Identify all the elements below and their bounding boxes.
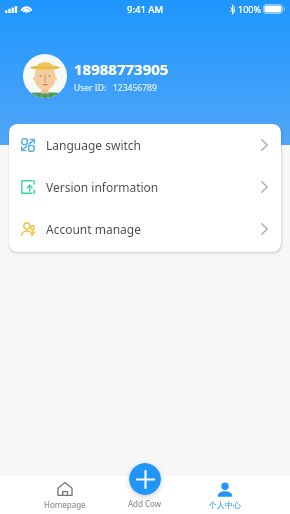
staticText: 123456789 [113,82,157,94]
button[interactable]: Account manage [9,208,281,250]
button[interactable]: Version information [9,166,281,208]
staticText: 18988773905 [74,59,169,79]
button[interactable]: Add Cow [121,476,169,514]
button[interactable]: Add Cow [129,463,161,495]
staticText: Account manage [46,221,141,237]
staticText: User ID: [74,82,107,94]
button[interactable]: 个人中心 [201,476,249,514]
staticText: Language switch [46,137,142,153]
staticText: Add Cow [128,498,162,509]
staticText: Homepage [44,499,86,510]
staticText: Version information [46,179,159,195]
staticText: 个人中心 [209,500,241,510]
button[interactable]: Homepage [41,476,89,514]
staticText: 9:41 AM [127,3,164,16]
button[interactable]: Language switch [9,124,281,166]
staticText: 100% [238,3,261,15]
